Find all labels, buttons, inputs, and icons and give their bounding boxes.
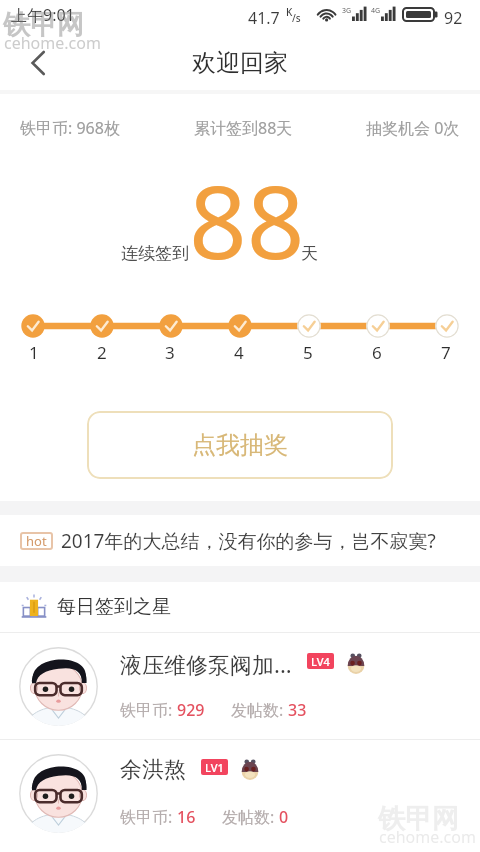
staticText: 抽奖机会 0次 [366, 117, 460, 139]
staticText: cehome.com [4, 32, 101, 54]
staticText: 每日签到之星 [57, 595, 171, 619]
staticText: 33 [288, 699, 307, 721]
staticText: 铁甲网 [3, 8, 84, 42]
staticText: 16 [177, 806, 196, 828]
staticText: 4G [371, 6, 381, 16]
staticText: LV1 [205, 760, 224, 775]
staticText: 2017年的大总结，没有你的参与，岂不寂寞? [61, 528, 436, 554]
staticText: 发帖数: [231, 699, 288, 721]
staticText: 1 [29, 341, 39, 364]
button[interactable]: Back [0, 36, 76, 90]
staticText: 0 [279, 806, 289, 828]
staticText: 上午9:01 [11, 4, 75, 26]
staticText: 连续签到 [121, 243, 189, 264]
staticText: 4 [234, 341, 244, 364]
staticText: 铁甲网 [378, 802, 459, 836]
button[interactable]: 液压维修泵阀加... [0, 633, 480, 739]
staticText: 41.7 [248, 7, 280, 29]
staticText: K [286, 5, 293, 19]
button[interactable]: 点我抽奖 [87, 411, 393, 479]
staticText: 发帖数: [222, 806, 279, 828]
staticText: 天 [301, 243, 318, 264]
staticText: 88 [189, 151, 305, 281]
staticText: 铁甲币: 968枚 [20, 117, 120, 139]
staticText: 929 [177, 699, 205, 721]
staticText: 5 [303, 341, 313, 364]
staticText: 3G [342, 6, 352, 16]
button[interactable]: hot [0, 515, 480, 566]
staticText: 余洪熬 [120, 756, 186, 784]
staticText: 92 [444, 7, 463, 29]
staticText: cehome.com [379, 826, 476, 848]
staticText: 7 [441, 341, 451, 364]
staticText: 点我抽奖 [192, 430, 288, 460]
staticText: /s [292, 11, 301, 25]
button[interactable]: 余洪熬 [0, 740, 480, 846]
staticText: hot [26, 532, 47, 550]
staticText: 铁甲币: [120, 699, 177, 721]
staticText: 铁甲币: [120, 806, 177, 828]
staticText: 累计签到88天 [194, 117, 293, 139]
staticText: LV4 [311, 654, 330, 669]
staticText: 6 [372, 341, 382, 364]
staticText: 2 [97, 341, 107, 364]
staticText: 3 [165, 341, 175, 364]
staticText: 欢迎回家 [192, 48, 288, 78]
staticText: 液压维修泵阀加... [120, 649, 292, 679]
